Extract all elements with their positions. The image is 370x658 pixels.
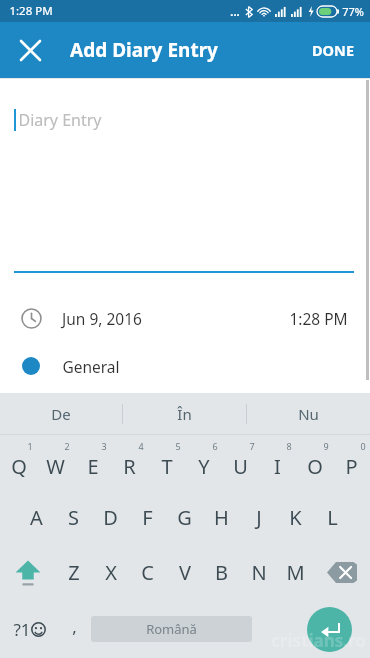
staticText: P xyxy=(345,453,358,480)
staticText: Y xyxy=(198,453,210,480)
staticText: 7 xyxy=(249,440,255,452)
button[interactable]: Română xyxy=(91,600,252,658)
staticText: DONE xyxy=(312,40,354,60)
staticText: J xyxy=(256,504,262,531)
button[interactable]: Shift xyxy=(0,545,55,600)
button[interactable]: L xyxy=(314,490,351,545)
button[interactable]: H xyxy=(203,490,240,545)
staticText: În xyxy=(177,404,192,424)
staticText: D xyxy=(103,504,118,531)
staticText: Diary Entry xyxy=(18,109,102,131)
staticText: V xyxy=(179,559,191,586)
button[interactable]: , xyxy=(58,600,91,658)
staticText: T xyxy=(161,453,173,480)
staticText: 0 xyxy=(360,440,366,452)
staticText: B xyxy=(215,559,228,586)
button[interactable]: W xyxy=(37,435,74,490)
button[interactable]: ?1 xyxy=(0,600,58,658)
staticText: Add Diary Entry xyxy=(70,37,218,63)
staticText: 3 xyxy=(101,440,107,452)
staticText: M xyxy=(286,559,305,586)
button[interactable]: De xyxy=(0,393,122,435)
button[interactable]: B xyxy=(203,545,240,600)
staticText: 2 xyxy=(64,440,70,452)
staticText: 1:28 PM xyxy=(9,3,53,19)
staticText: 1:28 PM xyxy=(289,308,348,329)
button[interactable]: D xyxy=(92,490,129,545)
button[interactable]: Jun 9, 2016 xyxy=(0,296,370,340)
button[interactable]: E xyxy=(74,435,111,490)
staticText: Q xyxy=(11,453,27,480)
button[interactable]: Y xyxy=(185,435,222,490)
button[interactable]: T xyxy=(148,435,185,490)
button[interactable]: Q xyxy=(0,435,37,490)
button[interactable]: F xyxy=(129,490,166,545)
staticText: S xyxy=(68,504,79,531)
staticText: Jun 9, 2016 xyxy=(62,308,142,329)
staticText: 9 xyxy=(323,440,329,452)
staticText: O xyxy=(307,453,323,480)
staticText: 1 xyxy=(27,440,33,452)
button[interactable]: I xyxy=(259,435,296,490)
staticText: cristians.ro xyxy=(271,629,366,652)
button[interactable]: Close xyxy=(10,30,50,70)
staticText: C xyxy=(141,559,154,586)
button[interactable]: S xyxy=(55,490,92,545)
staticText: H xyxy=(214,504,229,531)
staticText: Română xyxy=(146,620,197,638)
staticText: 4 xyxy=(138,440,144,452)
button[interactable]: P xyxy=(333,435,370,490)
button[interactable]: Z xyxy=(55,545,92,600)
staticText: Nu xyxy=(298,404,319,424)
button[interactable]: V xyxy=(166,545,203,600)
button[interactable]: K xyxy=(277,490,314,545)
staticText: U xyxy=(233,453,248,480)
staticText: W xyxy=(46,453,65,480)
button[interactable]: Enter xyxy=(289,600,370,658)
button[interactable]: J xyxy=(240,490,277,545)
button[interactable]: C xyxy=(129,545,166,600)
button[interactable]: În xyxy=(123,393,246,435)
staticText: ... xyxy=(230,4,240,19)
staticText: 6 xyxy=(212,440,218,452)
staticText: , xyxy=(72,615,77,638)
staticText: 8 xyxy=(286,440,292,452)
button[interactable]: G xyxy=(166,490,203,545)
staticText: N xyxy=(251,559,267,586)
staticText: R xyxy=(123,453,136,480)
staticText: 5 xyxy=(175,440,181,452)
button[interactable]: A xyxy=(18,490,55,545)
staticText: G xyxy=(177,504,192,531)
staticText: General xyxy=(62,356,120,377)
staticText: A xyxy=(30,504,43,531)
button[interactable]: General xyxy=(0,344,370,388)
button[interactable]: Backspace xyxy=(314,545,370,600)
staticText: X xyxy=(105,559,117,586)
staticText: K xyxy=(289,504,302,531)
button[interactable]: M xyxy=(277,545,314,600)
staticText: De xyxy=(51,404,71,424)
staticText: F xyxy=(142,504,153,531)
staticText: I xyxy=(274,453,281,480)
button[interactable]: N xyxy=(240,545,277,600)
staticText: L xyxy=(327,504,338,531)
button[interactable]: U xyxy=(222,435,259,490)
button[interactable]: R xyxy=(111,435,148,490)
staticText: E xyxy=(87,453,99,480)
button[interactable]: X xyxy=(92,545,129,600)
staticText: Z xyxy=(68,559,80,586)
staticText: ?1 xyxy=(13,618,31,641)
button[interactable]: DONE xyxy=(302,30,364,70)
button[interactable]: O xyxy=(296,435,333,490)
staticText: 77% xyxy=(342,4,364,19)
button[interactable]: Nu xyxy=(247,393,370,435)
